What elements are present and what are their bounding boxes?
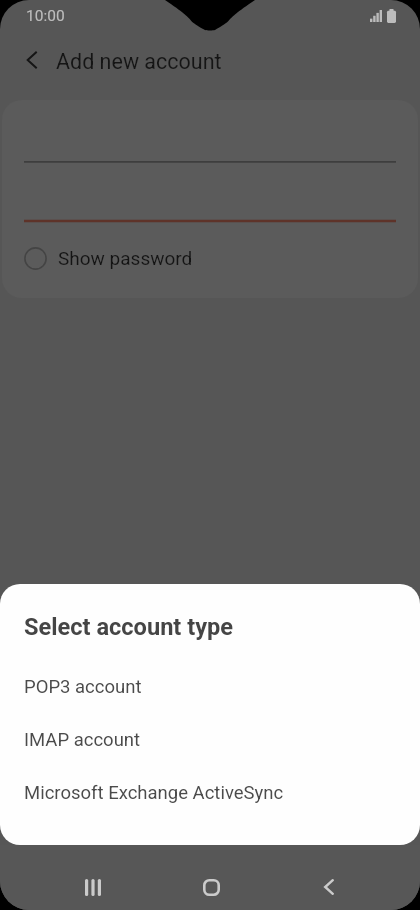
button[interactable]: Back	[299, 866, 359, 908]
button[interactable]: Navigate up	[14, 42, 50, 78]
button[interactable]: IMAP account	[0, 713, 420, 766]
button[interactable]: Recent apps	[63, 866, 123, 908]
staticText: 10:00	[26, 7, 65, 25]
button[interactable]: POP3 account	[0, 660, 420, 713]
button[interactable]: Microsoft Exchange ActiveSync	[0, 766, 420, 819]
staticText: Microsoft Exchange ActiveSync	[24, 782, 284, 804]
staticText: IMAP account	[24, 729, 141, 751]
staticText: Add new account	[56, 49, 222, 74]
staticText: POP3 account	[24, 676, 142, 698]
staticText: Select account type	[24, 613, 234, 641]
button[interactable]: Home	[181, 866, 241, 908]
button[interactable]: Show password	[20, 240, 193, 276]
staticText: Show password	[58, 247, 193, 269]
